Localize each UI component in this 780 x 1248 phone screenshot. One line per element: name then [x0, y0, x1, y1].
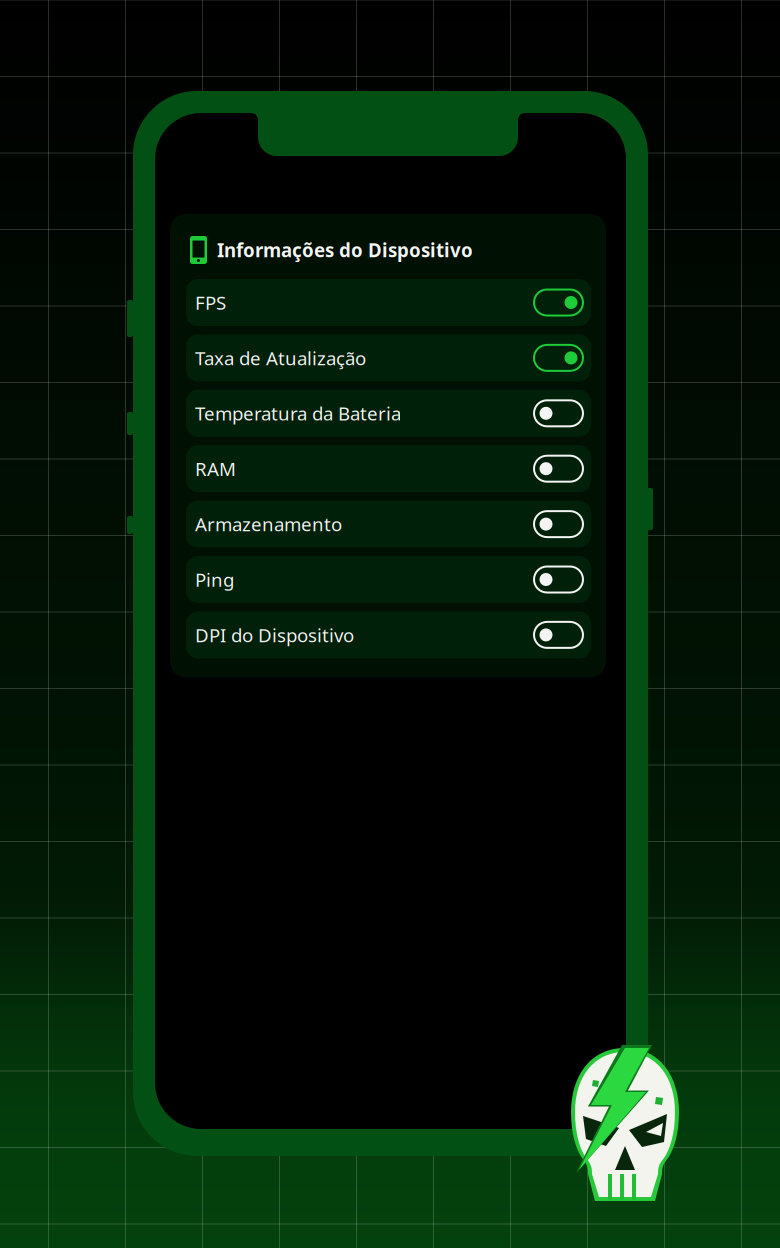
staticText: FPS — [195, 290, 226, 315]
button[interactable]: FPS — [186, 279, 591, 326]
button[interactable]: Armazenamento — [186, 501, 591, 548]
button[interactable]: RAM — [186, 445, 591, 492]
staticText: RAM — [195, 456, 236, 481]
staticText: DPI do Dispositivo — [195, 622, 354, 647]
staticText: Armazenamento — [195, 512, 342, 536]
staticText: Informações do Dispositivo — [217, 238, 473, 262]
button[interactable]: Ping — [186, 556, 591, 603]
button[interactable]: DPI do Dispositivo — [186, 611, 591, 658]
button[interactable]: Temperatura da Bateria — [186, 390, 591, 437]
staticText: Taxa de Atualização — [195, 345, 366, 370]
button[interactable]: Taxa de Atualização — [186, 334, 591, 381]
staticText: Temperatura da Bateria — [195, 401, 401, 426]
staticText: Ping — [195, 567, 234, 592]
